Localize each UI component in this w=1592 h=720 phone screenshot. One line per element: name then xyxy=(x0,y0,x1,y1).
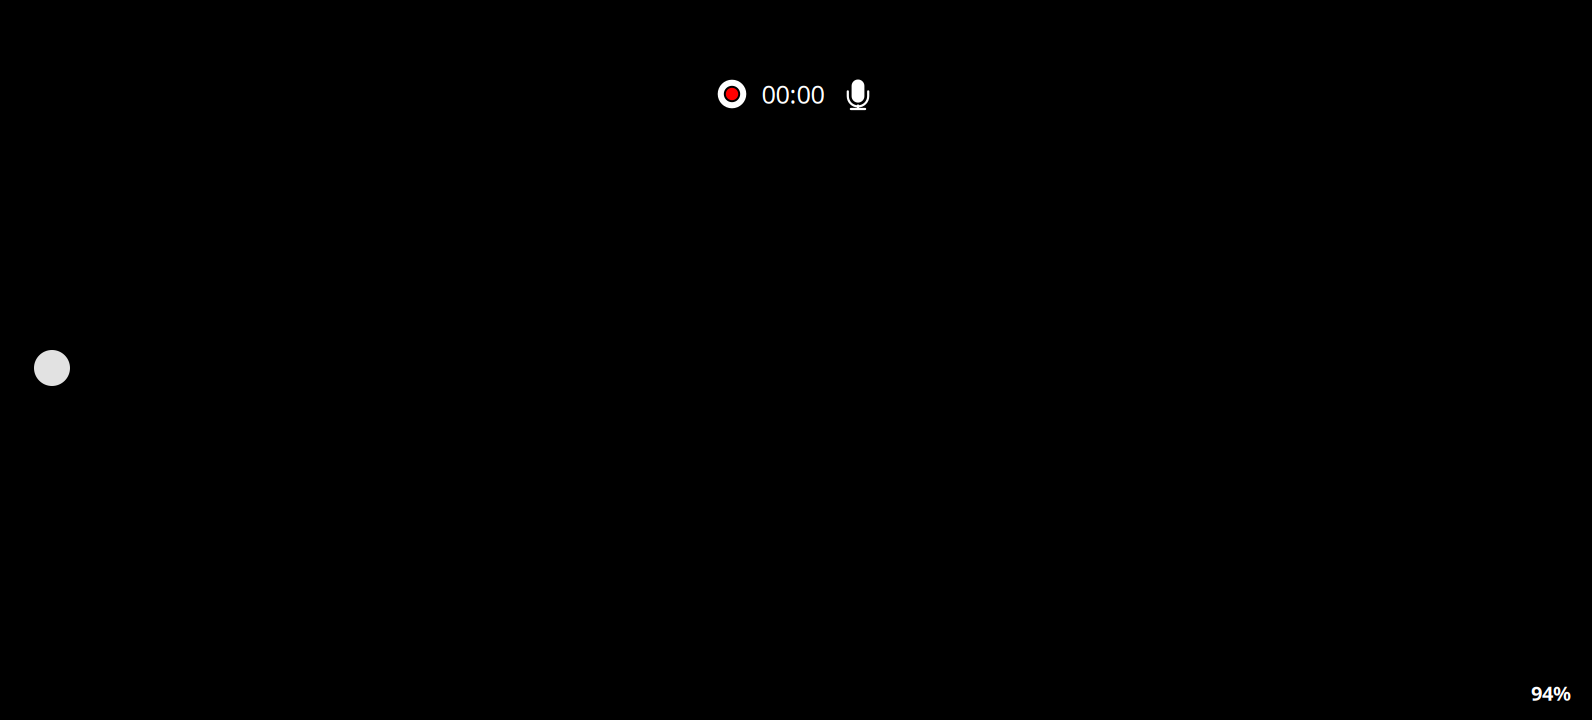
button[interactable]: Screen recording, 00:00, microphone on xyxy=(707,64,887,124)
staticText: 00:00 xyxy=(761,77,824,111)
button[interactable]: AssistiveTouch xyxy=(34,350,70,386)
staticText: 94% xyxy=(1531,680,1571,706)
